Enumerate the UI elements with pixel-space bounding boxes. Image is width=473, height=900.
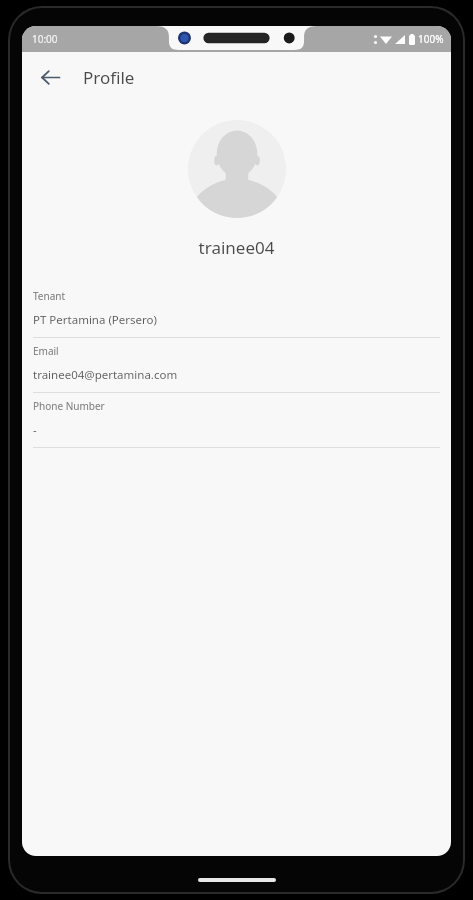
button[interactable]: Back	[28, 55, 72, 99]
button[interactable]: Phone Number	[22, 393, 451, 448]
button[interactable]: Tenant	[22, 283, 451, 338]
staticText: Phone Number	[33, 399, 105, 413]
staticText: trainee04	[22, 236, 451, 259]
staticText: 100%	[418, 32, 444, 46]
staticText: PT Pertamina (Persero)	[33, 312, 157, 328]
staticText: Email	[33, 344, 59, 358]
button[interactable]: Email	[22, 338, 451, 393]
staticText: trainee04@pertamina.com	[33, 367, 178, 383]
staticText: Tenant	[33, 289, 66, 303]
staticText: -	[33, 422, 37, 438]
button[interactable]: Profile photo	[188, 120, 286, 218]
staticText: 10:00	[32, 32, 58, 46]
staticText: Profile	[83, 66, 135, 89]
